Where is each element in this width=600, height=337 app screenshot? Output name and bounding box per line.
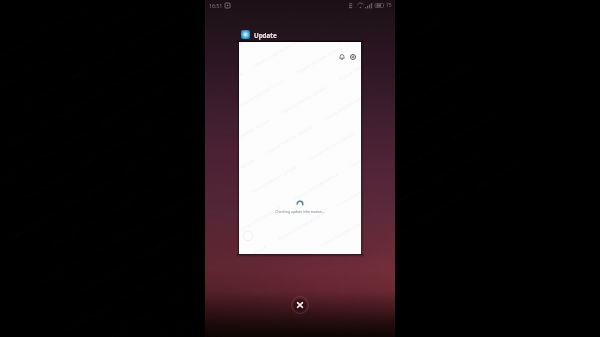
staticText: 16:51 xyxy=(209,2,223,9)
button[interactable]: Notifications xyxy=(338,53,346,61)
staticText: Checking update information... xyxy=(275,209,325,214)
staticText: Update xyxy=(254,31,277,39)
button[interactable]: Settings xyxy=(349,53,357,61)
button[interactable]: Close xyxy=(291,296,309,314)
staticText: 75 xyxy=(386,2,392,9)
